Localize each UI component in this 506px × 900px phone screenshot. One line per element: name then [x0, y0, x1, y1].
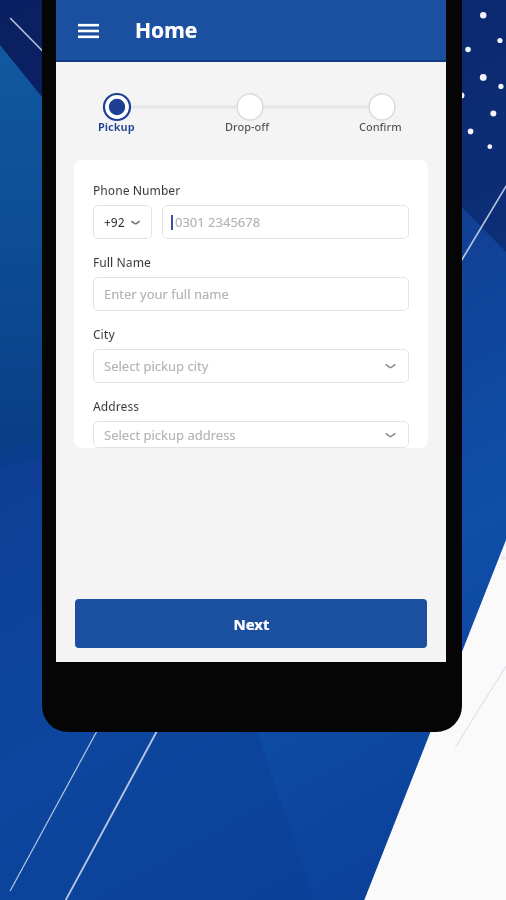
staticText: +92	[104, 214, 125, 230]
staticText: City	[93, 326, 115, 342]
button[interactable]: Enter your full name	[93, 277, 409, 311]
staticText: Address	[93, 398, 140, 414]
staticText: Full Name	[93, 254, 151, 270]
button[interactable]: +92	[93, 205, 152, 239]
staticText: Home	[135, 16, 198, 45]
staticText: Next	[233, 614, 270, 634]
button[interactable]: Select pickup address	[93, 421, 409, 448]
staticText: Enter your full name	[104, 285, 229, 303]
staticText: Select pickup city	[104, 357, 209, 375]
button[interactable]: Next	[75, 599, 427, 648]
staticText: Confirm	[359, 119, 402, 134]
button[interactable]: Select pickup city	[93, 349, 409, 383]
staticText: 0301 2345678	[175, 213, 261, 231]
staticText: Phone Number	[93, 182, 181, 198]
button[interactable]: Open navigation menu	[66, 9, 110, 53]
staticText: Drop-off	[225, 119, 270, 134]
button[interactable]: 0301 2345678	[162, 205, 409, 239]
staticText: Select pickup address	[104, 426, 236, 444]
staticText: Pickup	[98, 119, 135, 134]
